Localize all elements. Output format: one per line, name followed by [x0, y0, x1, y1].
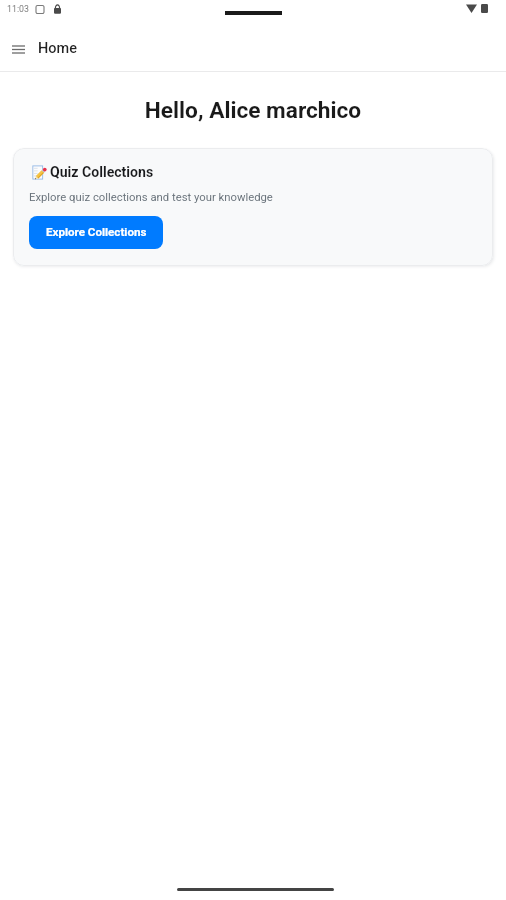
staticText: Explore Collections [46, 225, 147, 239]
button[interactable]: Quiz Collections [13, 148, 493, 266]
staticText: 11:03 [7, 4, 29, 14]
staticText: Explore quiz collections and test your k… [29, 191, 273, 204]
button[interactable]: Open navigation menu [4, 34, 33, 63]
staticText: Hello, Alice marchico [0, 97, 506, 124]
button[interactable]: Explore Collections [29, 216, 163, 249]
staticText: Home [38, 40, 77, 57]
staticText: Quiz Collections [50, 164, 154, 181]
